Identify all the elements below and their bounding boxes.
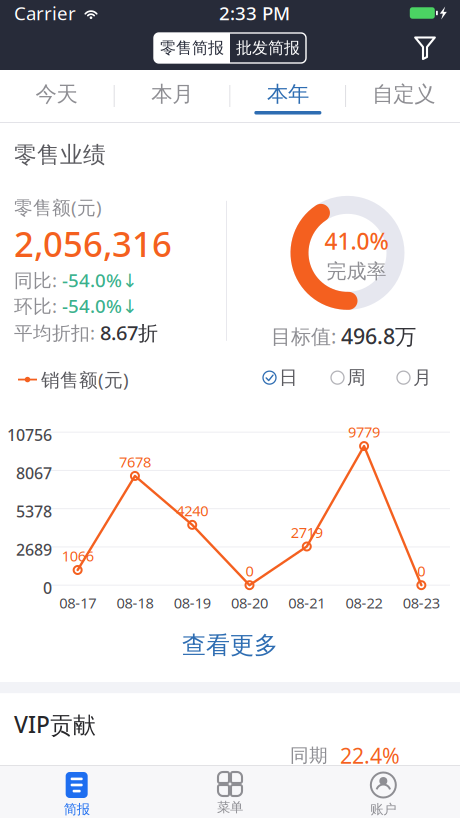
staticText: 08-21 <box>288 593 325 613</box>
staticText: 自定义 <box>372 81 435 107</box>
staticText: 08-20 <box>231 593 268 613</box>
staticText: 账户 <box>370 801 396 817</box>
button[interactable]: 批发简报 <box>230 33 306 63</box>
staticText: 496.8万 <box>341 322 416 350</box>
button[interactable]: 查看更多 <box>0 608 460 682</box>
staticText: 0 <box>417 561 425 581</box>
staticText: 零售简报 <box>160 38 224 58</box>
staticText: 08-19 <box>174 593 211 613</box>
staticText: 2:33 PM <box>219 1 290 25</box>
staticText: 08-23 <box>403 593 440 613</box>
staticText: 月 <box>413 366 432 389</box>
staticText: 1066 <box>62 546 94 565</box>
staticText: 零售额(元) <box>14 195 102 220</box>
staticText: 同比: <box>14 268 62 292</box>
staticText: 0 <box>245 561 253 581</box>
staticText: 环比: <box>14 293 62 318</box>
button[interactable]: 本年 <box>230 70 345 122</box>
staticText: 同期 <box>290 744 328 767</box>
button[interactable]: 周 <box>331 366 366 389</box>
staticText: 完成率 <box>326 259 386 284</box>
button[interactable]: 菜单 <box>153 766 307 818</box>
staticText: 2719 <box>291 522 323 542</box>
button[interactable]: 本月 <box>115 70 230 122</box>
staticText: Carrier <box>14 1 76 25</box>
button[interactable]: 月 <box>397 366 432 389</box>
staticText: 10756 <box>7 424 52 445</box>
button[interactable]: 零售简报 <box>154 33 230 63</box>
staticText: 平均折扣: <box>14 320 100 345</box>
button[interactable]: 自定义 <box>346 70 460 122</box>
button[interactable]: 今天 <box>0 70 114 122</box>
staticText: 日 <box>279 366 298 389</box>
staticText: 4240 <box>176 501 208 520</box>
staticText: 0 <box>43 577 52 598</box>
staticText: -54.0%↓ <box>62 268 138 292</box>
staticText: 08-22 <box>346 593 383 613</box>
staticText: 9779 <box>348 422 380 442</box>
button[interactable]: 筛选 <box>402 26 448 70</box>
staticText: 周 <box>347 366 366 389</box>
staticText: 2689 <box>16 539 52 560</box>
button[interactable]: 简报 <box>0 766 153 818</box>
staticText: 零售业绩 <box>14 141 106 169</box>
staticText: 销售额(元) <box>41 367 129 392</box>
staticText: 本月 <box>151 81 193 107</box>
staticText: 5378 <box>16 501 52 522</box>
staticText: 查看更多 <box>182 630 278 660</box>
staticText: 08-18 <box>116 593 153 613</box>
staticText: 菜单 <box>217 799 243 815</box>
staticText: 8.67折 <box>100 319 158 346</box>
staticText: -54.0%↓ <box>62 293 138 318</box>
staticText: 22.4% <box>340 741 400 770</box>
staticText: 08-17 <box>59 593 96 613</box>
button[interactable]: 日 <box>263 366 298 389</box>
staticText: 批发简报 <box>236 38 300 58</box>
staticText: 今天 <box>35 81 77 107</box>
staticText: 简报 <box>64 801 90 817</box>
button[interactable]: 账户 <box>307 766 460 818</box>
staticText: 8067 <box>16 462 52 484</box>
staticText: VIP贡献 <box>14 709 96 739</box>
staticText: 2,056,316 <box>14 221 172 267</box>
staticText: 41.0% <box>324 226 388 256</box>
staticText: 目标值: <box>271 323 341 349</box>
staticText: 7678 <box>119 452 151 471</box>
staticText: 本年 <box>267 81 309 107</box>
